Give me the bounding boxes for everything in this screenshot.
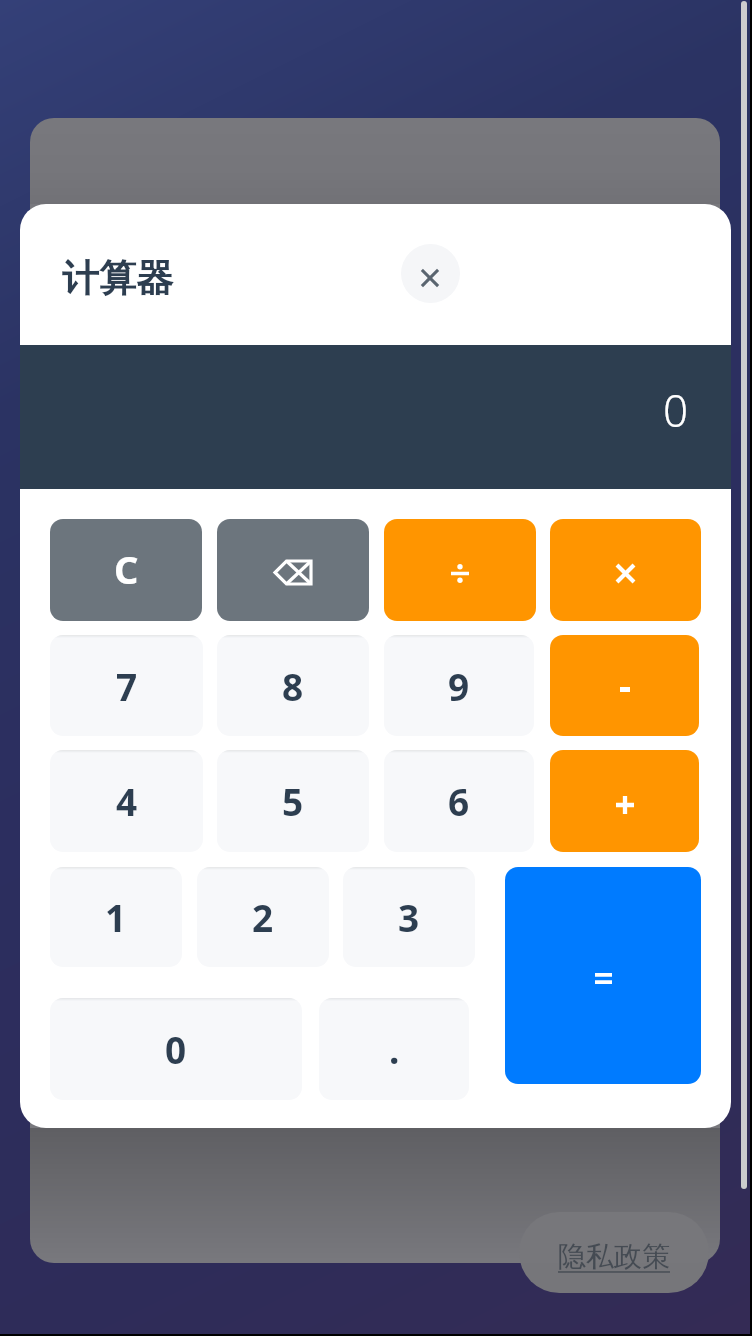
staticText: 2: [252, 892, 274, 942]
button[interactable]: 9: [384, 635, 534, 736]
staticText: 5: [282, 776, 304, 826]
staticText: 8: [282, 661, 304, 711]
button[interactable]: C: [50, 519, 202, 621]
button[interactable]: 3: [343, 867, 475, 967]
staticText: 0: [165, 1024, 187, 1074]
staticText: 3: [398, 892, 420, 942]
staticText: C: [114, 543, 139, 595]
other: Plus: [616, 796, 634, 814]
button[interactable]: 7: [50, 635, 203, 736]
button[interactable]: Equals: [505, 867, 701, 1084]
staticText: 9: [448, 661, 470, 711]
staticText: 6: [448, 776, 470, 826]
button[interactable]: Divide: [384, 519, 536, 621]
button[interactable]: Backspace: [217, 519, 369, 621]
staticText: 计算器: [62, 255, 173, 302]
button[interactable]: Close: [401, 244, 460, 303]
staticText: 1: [105, 892, 127, 942]
other: Divide: [451, 565, 469, 582]
button[interactable]: 4: [50, 750, 203, 852]
staticText: 隐私政策: [558, 1239, 670, 1274]
button[interactable]: 0: [50, 998, 302, 1100]
button[interactable]: 1: [50, 867, 182, 967]
staticText: 4: [116, 776, 138, 826]
button[interactable]: 隐私政策: [519, 1212, 709, 1293]
button[interactable]: 8: [217, 635, 369, 736]
button[interactable]: Multiply: [550, 519, 701, 621]
staticText: 0: [663, 380, 689, 440]
button[interactable]: .: [319, 998, 469, 1100]
button[interactable]: Minus: [550, 635, 699, 736]
staticText: 7: [116, 661, 138, 711]
other: Multiply: [617, 565, 634, 582]
button[interactable]: 5: [217, 750, 369, 852]
staticText: .: [389, 1024, 400, 1074]
button[interactable]: Plus: [550, 750, 699, 852]
button[interactable]: 6: [384, 750, 534, 852]
button[interactable]: 2: [197, 867, 329, 967]
other: Backspace: [275, 561, 311, 584]
other: Equals: [595, 973, 612, 984]
